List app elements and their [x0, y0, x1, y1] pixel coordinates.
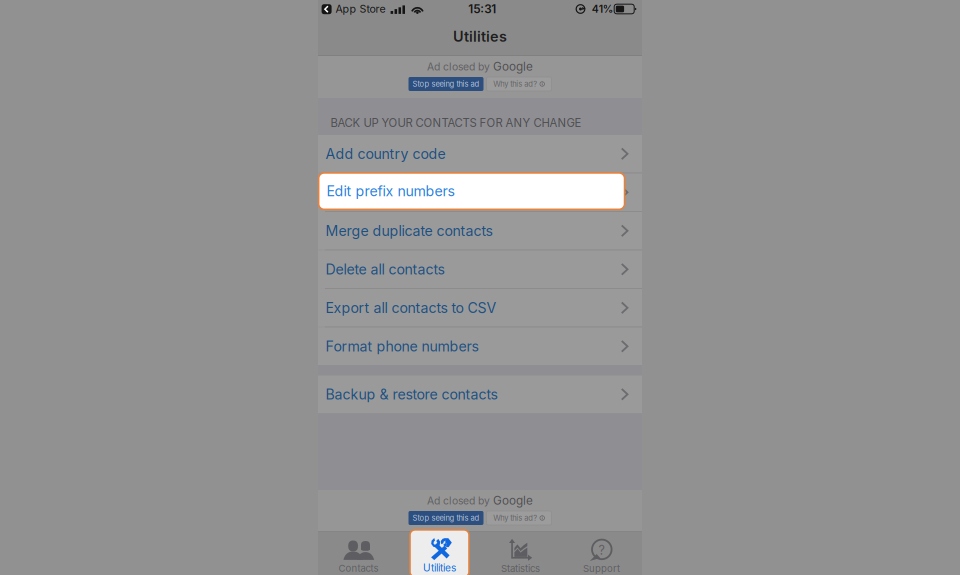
button[interactable]: Stop seeing this ad	[408, 77, 483, 91]
staticText: App Store	[335, 2, 385, 15]
staticText: Google	[493, 59, 533, 74]
staticText: Backup & restore contacts	[325, 386, 497, 403]
staticText: Add country code	[325, 145, 445, 162]
staticText: Stop seeing this ad	[412, 513, 479, 523]
button[interactable]: ?	[561, 531, 642, 575]
button[interactable]: Statistics	[480, 531, 561, 575]
staticText: Support	[583, 563, 620, 574]
button[interactable]: Add country code	[318, 135, 642, 173]
staticText: Utilities	[453, 28, 507, 45]
staticText: Statistics	[501, 563, 540, 574]
button[interactable]: Utilities	[399, 531, 480, 575]
button[interactable]: Export all contacts to CSV	[318, 289, 642, 327]
staticText: Delete all contacts	[325, 261, 444, 278]
button[interactable]: Edit prefix numbers	[319, 173, 625, 209]
staticText: ?	[598, 542, 604, 558]
button[interactable]: Backup & restore contacts	[318, 375, 642, 413]
staticText: Why this ad?	[493, 513, 537, 523]
staticText: Why this ad?	[493, 79, 537, 89]
staticText: Utilities	[423, 562, 456, 574]
staticText: Google	[493, 493, 533, 508]
button[interactable]: Format phone numbers	[318, 327, 642, 365]
staticText: Ad closed by	[427, 494, 490, 507]
staticText: Merge duplicate contacts	[325, 222, 492, 239]
button[interactable]: Why this ad?	[486, 511, 551, 525]
staticText: Stop seeing this ad	[412, 79, 479, 89]
button[interactable]: Why this ad?	[486, 77, 551, 91]
staticText: 15:31	[468, 2, 496, 16]
button[interactable]: Delete all contacts	[318, 250, 642, 288]
button[interactable]: Contacts	[318, 531, 399, 575]
staticText: Contacts	[338, 562, 378, 574]
staticText: 41%	[592, 2, 614, 15]
button[interactable]: Stop seeing this ad	[408, 511, 483, 525]
staticText: Format phone numbers	[325, 338, 478, 355]
button[interactable]: Edit prefix numbers	[318, 173, 642, 211]
staticText: BACK UP YOUR CONTACTS FOR ANY CHANGE	[330, 116, 581, 130]
staticText: Edit prefix numbers	[325, 184, 453, 201]
button[interactable]: Merge duplicate contacts	[318, 212, 642, 250]
staticText: Ad closed by	[427, 60, 490, 73]
staticText: Edit prefix numbers	[327, 183, 455, 200]
staticText: Export all contacts to CSV	[325, 299, 496, 316]
